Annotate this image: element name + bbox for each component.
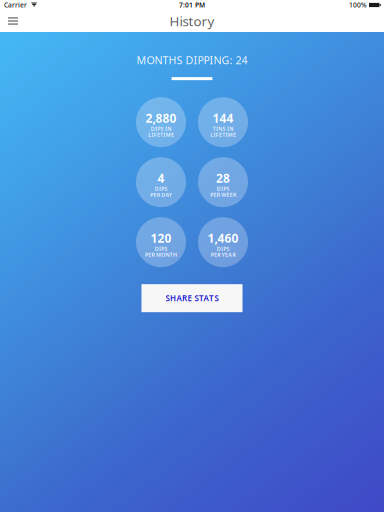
button[interactable]: Menu: [0, 10, 28, 32]
staticText: DIPS IN: [151, 125, 171, 132]
staticText: 4: [157, 170, 164, 186]
staticText: PER MONTH: [145, 251, 177, 258]
staticText: SHARE STATS: [165, 293, 218, 303]
staticText: 144: [212, 110, 233, 126]
staticText: 2,880: [145, 110, 176, 126]
button[interactable]: SHARE STATS: [141, 284, 242, 312]
staticText: 7:01 PM: [179, 1, 205, 9]
staticText: DIPS: [155, 185, 167, 192]
staticText: LIFETIME: [148, 131, 174, 138]
staticText: 120: [150, 230, 171, 246]
staticText: DIPS: [155, 245, 167, 252]
staticText: PER DAY: [150, 191, 172, 198]
staticText: TINS IN: [213, 125, 233, 132]
staticText: Carrier: [4, 1, 27, 9]
staticText: LIFETIME: [210, 131, 236, 138]
staticText: DIPS: [217, 245, 229, 252]
staticText: PER YEAR: [211, 251, 235, 258]
staticText: 1,460: [207, 230, 238, 246]
staticText: 28: [216, 170, 230, 186]
staticText: 100%: [349, 1, 367, 9]
staticText: History: [169, 12, 214, 30]
staticText: MONTHS DIPPING: 24: [136, 53, 247, 67]
staticText: DIPS: [217, 185, 229, 192]
staticText: PER WEEK: [210, 191, 236, 198]
